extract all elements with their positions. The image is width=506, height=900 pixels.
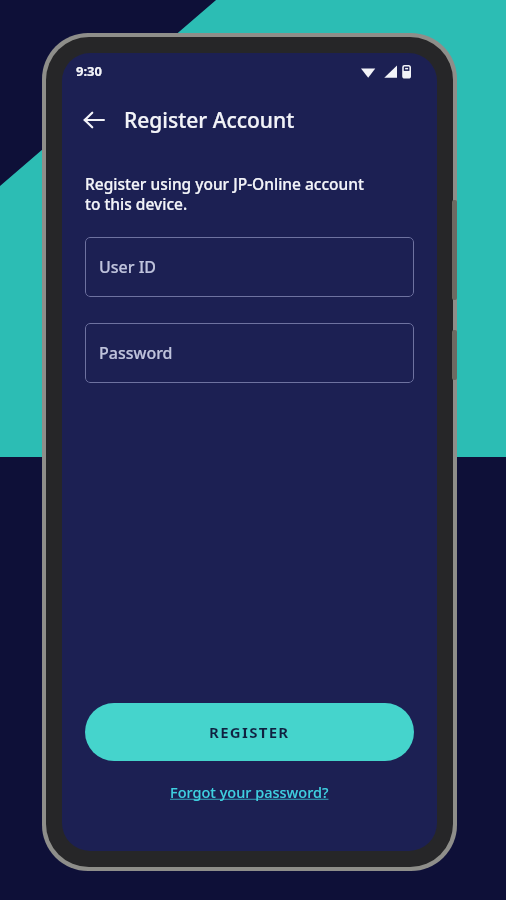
- staticText: Register using your JP-Online account to…: [85, 173, 364, 215]
- button[interactable]: Back: [72, 98, 116, 142]
- staticText: Register Account: [124, 106, 295, 135]
- staticText: Password: [99, 342, 173, 364]
- staticText: User ID: [99, 256, 157, 278]
- staticText: REGISTER: [209, 722, 290, 742]
- staticText: 9:30: [76, 62, 102, 80]
- button[interactable]: Forgot your password?: [164, 779, 335, 805]
- staticText: Forgot your password?: [170, 782, 329, 802]
- button[interactable]: Password: [85, 323, 414, 383]
- button[interactable]: User ID: [85, 237, 414, 297]
- button[interactable]: REGISTER: [85, 703, 414, 761]
